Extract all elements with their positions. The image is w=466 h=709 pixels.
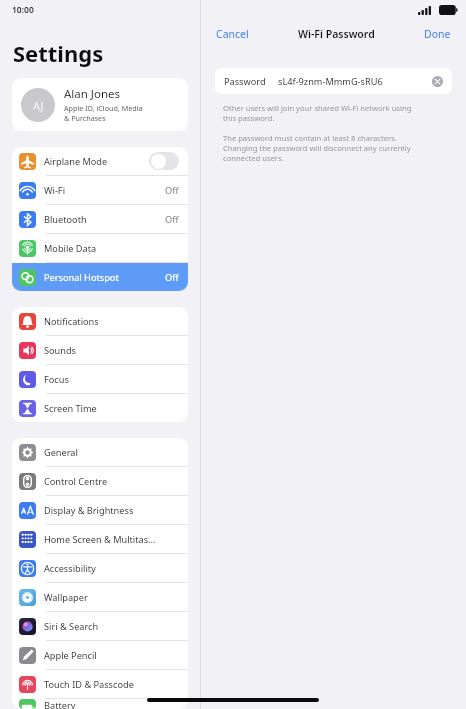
staticText: General: [44, 446, 179, 459]
button[interactable]: Focus: [12, 365, 188, 393]
button[interactable]: Airplane Mode: [12, 147, 188, 175]
staticText: connected users.: [223, 153, 284, 163]
staticText: Other users will join your shared Wi-Fi …: [223, 103, 412, 113]
button[interactable]: General: [12, 438, 188, 466]
staticText: Apple ID, iCloud, Media: [64, 103, 143, 113]
staticText: Changing the password will disconnect an…: [223, 143, 411, 153]
staticText: Screen Time: [44, 402, 179, 415]
button[interactable]: Clear password: [432, 76, 443, 87]
button[interactable]: Wi-Fi: [12, 176, 188, 204]
staticText: Personal Hotspot: [44, 271, 165, 284]
staticText: Wi-Fi Password: [298, 27, 375, 41]
button[interactable]: Cancel: [214, 25, 251, 43]
staticText: sL4f-9znm-MmmG-sRU6: [278, 75, 432, 88]
button[interactable]: Battery: [12, 699, 188, 709]
button[interactable]: Screen Time: [12, 394, 188, 422]
staticText: Siri & Search: [44, 620, 179, 633]
staticText: Battery: [44, 699, 179, 709]
staticText: Settings: [13, 38, 104, 68]
staticText: 10:00: [12, 4, 34, 16]
button[interactable]: Airplane Mode toggle: [149, 152, 179, 170]
staticText: Wallpaper: [44, 591, 179, 604]
button[interactable]: Control Centre: [12, 467, 188, 495]
button[interactable]: Touch ID & Passcode: [12, 670, 188, 698]
staticText: & Purchases: [64, 113, 106, 123]
staticText: Done: [424, 27, 451, 41]
button[interactable]: Apple Pencil: [12, 641, 188, 669]
button[interactable]: Done: [422, 25, 453, 43]
staticText: this password.: [223, 113, 275, 123]
staticText: Off: [165, 213, 179, 226]
staticText: Off: [165, 184, 179, 197]
staticText: The password must contain at least 8 cha…: [223, 133, 397, 143]
button[interactable]: Mobile Data: [12, 234, 188, 262]
button[interactable]: Password: [215, 68, 452, 94]
button[interactable]: Siri & Search: [12, 612, 188, 640]
staticText: Control Centre: [44, 475, 179, 488]
staticText: Password: [224, 75, 266, 88]
button[interactable]: Display & Brightness: [12, 496, 188, 524]
staticText: Off: [165, 271, 179, 284]
button[interactable]: Wallpaper: [12, 583, 188, 611]
staticText: Mobile Data: [44, 242, 179, 255]
staticText: Wi-Fi: [44, 184, 165, 197]
staticText: Sounds: [44, 344, 179, 357]
staticText: Notifications: [44, 315, 179, 328]
staticText: Apple Pencil: [44, 649, 179, 662]
button[interactable]: Sounds: [12, 336, 188, 364]
staticText: Alan Jones: [64, 86, 121, 102]
staticText: Cancel: [216, 27, 249, 41]
staticText: AJ: [33, 98, 44, 113]
button[interactable]: Home Screen & Multitas...: [12, 525, 188, 553]
staticText: Display & Brightness: [44, 504, 179, 517]
button[interactable]: Bluetooth: [12, 205, 188, 233]
button[interactable]: Notifications: [12, 307, 188, 335]
staticText: Focus: [44, 373, 179, 386]
staticText: Accessibility: [44, 562, 179, 575]
staticText: Airplane Mode: [44, 155, 149, 168]
staticText: Touch ID & Passcode: [44, 678, 179, 691]
staticText: Home Screen & Multitas...: [44, 533, 179, 546]
button[interactable]: Accessibility: [12, 554, 188, 582]
button[interactable]: AJ: [12, 78, 188, 131]
staticText: Bluetooth: [44, 213, 165, 226]
button[interactable]: Personal Hotspot: [12, 263, 188, 291]
